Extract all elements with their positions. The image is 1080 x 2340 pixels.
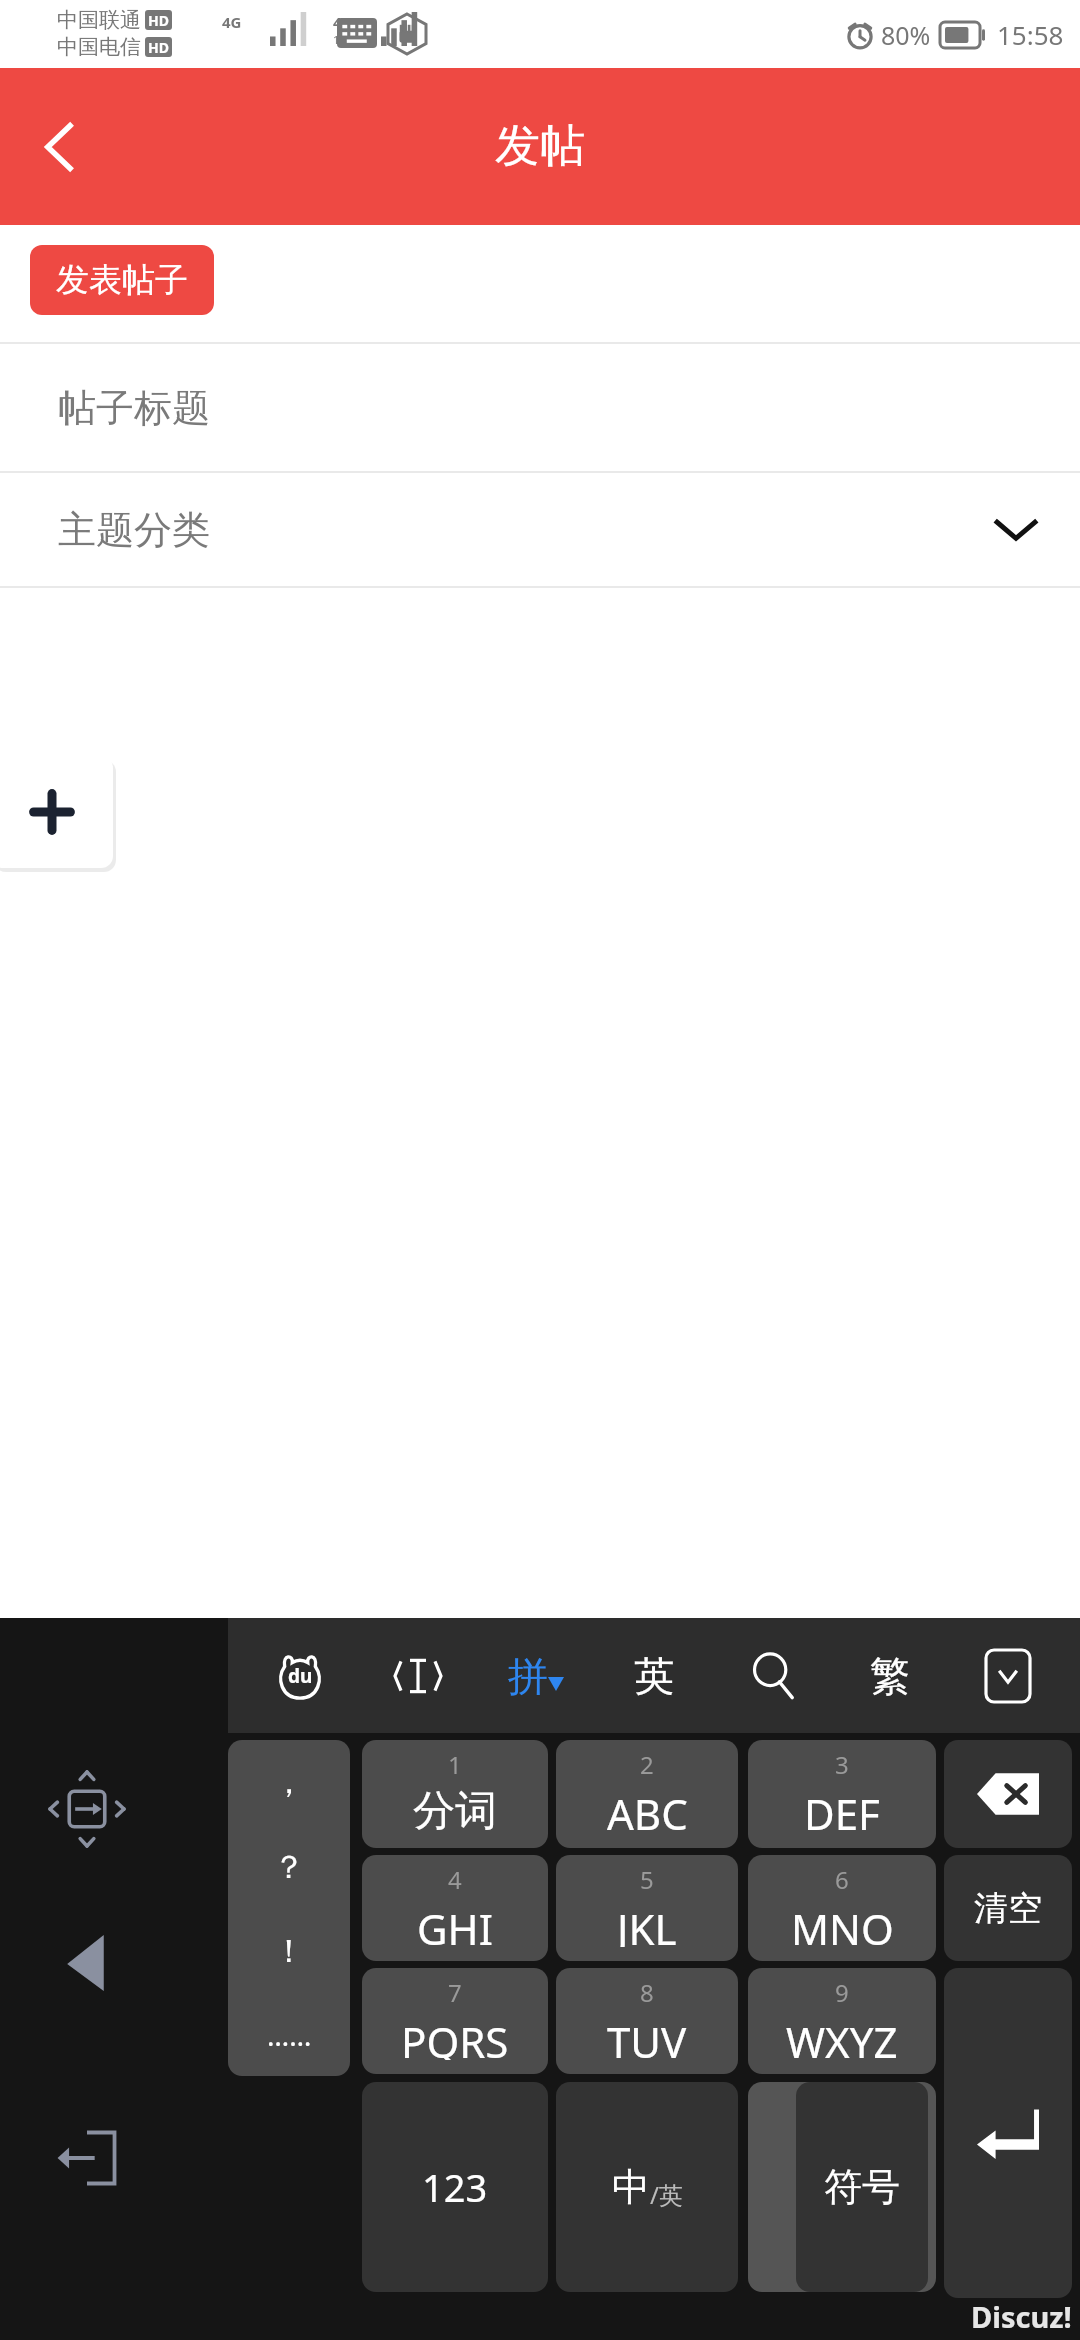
staticText: HD <box>148 38 169 57</box>
staticText: 中国联通 <box>57 7 141 33</box>
staticText: Discuz! <box>971 2297 1072 2336</box>
staticText: 分词 <box>413 1785 497 1834</box>
button[interactable]: TUV <box>556 1968 738 2074</box>
staticText: /英 <box>650 2178 683 2211</box>
button[interactable]: Move keyboard <box>42 1764 132 1854</box>
staticText: PQRS <box>401 2013 509 2060</box>
button[interactable]: WXYZ <box>748 1968 936 2074</box>
button[interactable]: Symbols <box>796 2082 928 2292</box>
staticText: 7 <box>448 1976 462 2009</box>
button[interactable]: Hide input <box>42 2113 132 2203</box>
staticText: 繁 <box>870 1651 910 1701</box>
button[interactable]: Hide keyboard <box>960 1618 1056 1733</box>
button[interactable]: 123 <box>362 2082 548 2292</box>
staticText: ABC <box>607 1785 688 1834</box>
button[interactable]: 发表帖子 <box>30 245 214 315</box>
button[interactable]: DEF <box>748 1740 936 1848</box>
staticText: WXYZ <box>786 2013 898 2060</box>
staticText: 2 <box>640 1748 654 1781</box>
button[interactable]: GHI <box>362 1855 548 1961</box>
staticText: 发帖 <box>495 118 585 175</box>
button[interactable]: Space / voice input <box>748 2082 936 2292</box>
staticText: 4G <box>333 12 353 32</box>
staticText: 4G <box>222 12 242 32</box>
staticText: 15:58 <box>997 17 1064 52</box>
button[interactable]: ABC <box>556 1740 738 1848</box>
button[interactable]: Enter <box>944 1968 1072 2298</box>
staticText: 中国电信 <box>57 34 141 60</box>
staticText: 6 <box>835 1863 849 1896</box>
staticText: 符号 <box>824 2163 900 2211</box>
staticText: 123 <box>422 2161 488 2213</box>
staticText: 主题分类 <box>58 506 210 554</box>
button[interactable]: JKL <box>556 1855 738 1961</box>
staticText: 帖子标题 <box>58 384 210 432</box>
button[interactable]: Punctuation <box>228 1740 350 2076</box>
staticText: ， <box>273 1762 305 1802</box>
button[interactable]: Cursor <box>370 1618 466 1733</box>
staticText: ！ <box>273 1931 305 1971</box>
button[interactable]: 帖子标题 <box>0 344 1080 471</box>
staticText: 4 <box>448 1863 462 1896</box>
staticText: 1 <box>448 1748 462 1781</box>
staticText: HD <box>148 11 169 30</box>
staticText: 5 <box>640 1863 654 1896</box>
staticText: 9 <box>835 1976 849 2009</box>
button[interactable]: PQRS <box>362 1968 548 2074</box>
button[interactable]: Pinyin <box>488 1618 584 1733</box>
button[interactable]: Backspace <box>944 1740 1072 1848</box>
staticText: …… <box>267 2016 312 2054</box>
staticText: 3 <box>835 1748 849 1781</box>
staticText: 80% <box>881 18 931 52</box>
staticText: ？ <box>273 1847 305 1887</box>
button[interactable]: Clear <box>944 1855 1072 1961</box>
button[interactable]: Search <box>724 1618 820 1733</box>
staticText: 英 <box>634 1651 674 1701</box>
staticText: GHI <box>417 1900 493 1947</box>
staticText: 清空 <box>974 1887 1042 1930</box>
button[interactable]: Back <box>0 68 120 225</box>
staticText: JKL <box>617 1900 677 1947</box>
button[interactable]: Cursor left <box>42 1918 132 2008</box>
staticText: 发表帖子 <box>56 259 188 301</box>
button[interactable]: 主题分类 <box>0 473 1080 586</box>
button[interactable]: Traditional <box>842 1618 938 1733</box>
button[interactable]: Chinese English toggle <box>556 2082 738 2292</box>
staticText: 8 <box>640 1976 654 2009</box>
button[interactable]: English <box>606 1618 702 1733</box>
staticText: TUV <box>607 2013 687 2060</box>
button[interactable]: Baidu input <box>252 1618 348 1733</box>
staticText: MNO <box>791 1900 894 1947</box>
staticText: 拼 <box>508 1651 548 1701</box>
button[interactable]: 分词 <box>362 1740 548 1848</box>
staticText: du <box>288 1663 313 1689</box>
staticText: DEF <box>804 1785 880 1834</box>
button[interactable]: MNO <box>748 1855 936 1961</box>
staticText: 中 <box>612 2163 650 2211</box>
staticText: 1↓ <box>333 32 349 47</box>
button[interactable]: Add image <box>0 756 113 868</box>
